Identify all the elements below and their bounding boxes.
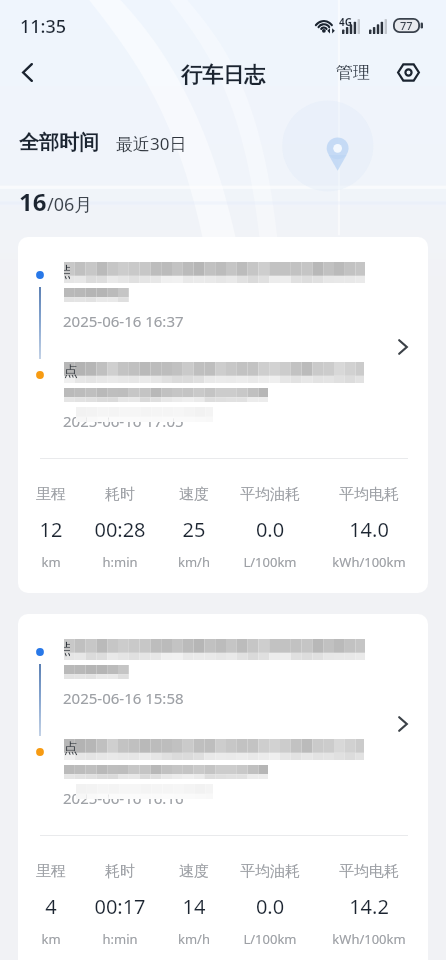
- staticText: 速度: [134, 485, 254, 504]
- button[interactable]: 点: [18, 614, 428, 960]
- staticText: 14: [134, 893, 254, 920]
- staticText: 管理: [336, 62, 370, 83]
- staticText: 点: [64, 640, 70, 658]
- staticText: kWh/100km: [309, 553, 428, 571]
- button[interactable]: Back: [4, 49, 50, 95]
- staticText: 16: [19, 185, 47, 218]
- staticText: 0.0: [210, 516, 330, 543]
- staticText: 2025-06-16 15:58: [63, 688, 184, 708]
- staticText: 平均电耗: [309, 862, 428, 881]
- staticText: 点: [64, 740, 78, 758]
- staticText: 耗时: [60, 862, 180, 881]
- staticText: 平均油耗: [210, 862, 330, 881]
- staticText: 14.0: [309, 516, 428, 543]
- staticText: 14.2: [309, 893, 428, 920]
- staticText: km/h: [134, 553, 254, 571]
- staticText: km: [18, 930, 111, 948]
- staticText: 耗时: [60, 485, 180, 504]
- staticText: 11:35: [20, 14, 67, 39]
- staticText: 2025-06-16 16:16: [63, 788, 184, 808]
- staticText: 全部时间: [19, 130, 99, 155]
- staticText: 里程: [18, 862, 111, 881]
- staticText: 平均电耗: [309, 485, 428, 504]
- staticText: /06月: [47, 192, 93, 217]
- button[interactable]: 最近30日: [116, 132, 187, 155]
- staticText: 2025-06-16 16:37: [63, 311, 184, 331]
- staticText: kWh/100km: [309, 930, 428, 948]
- staticText: 最近30日: [116, 132, 187, 155]
- staticText: 4G: [339, 15, 352, 29]
- staticText: 里程: [18, 485, 111, 504]
- staticText: L/100km: [210, 553, 330, 571]
- button[interactable]: 管理: [330, 54, 376, 91]
- staticText: 77: [400, 18, 413, 33]
- staticText: 速度: [134, 862, 254, 881]
- staticText: km/h: [134, 930, 254, 948]
- staticText: 0.0: [210, 893, 330, 920]
- staticText: h:min: [60, 930, 180, 948]
- staticText: 行车日志: [181, 62, 265, 88]
- staticText: 12: [18, 516, 111, 543]
- staticText: km: [18, 553, 111, 571]
- button[interactable]: 全部时间: [19, 130, 99, 155]
- staticText: 点: [64, 363, 78, 381]
- staticText: 25: [134, 516, 254, 543]
- staticText: 4: [18, 893, 111, 920]
- staticText: 2025-06-16 17:05: [63, 411, 184, 431]
- staticText: 00:28: [60, 516, 180, 543]
- staticText: L/100km: [210, 930, 330, 948]
- staticText: h:min: [60, 553, 180, 571]
- staticText: 点: [64, 263, 70, 281]
- staticText: 00:17: [60, 893, 180, 920]
- staticText: 平均油耗: [210, 485, 330, 504]
- button[interactable]: 点: [18, 237, 428, 593]
- button[interactable]: Settings: [389, 53, 427, 91]
